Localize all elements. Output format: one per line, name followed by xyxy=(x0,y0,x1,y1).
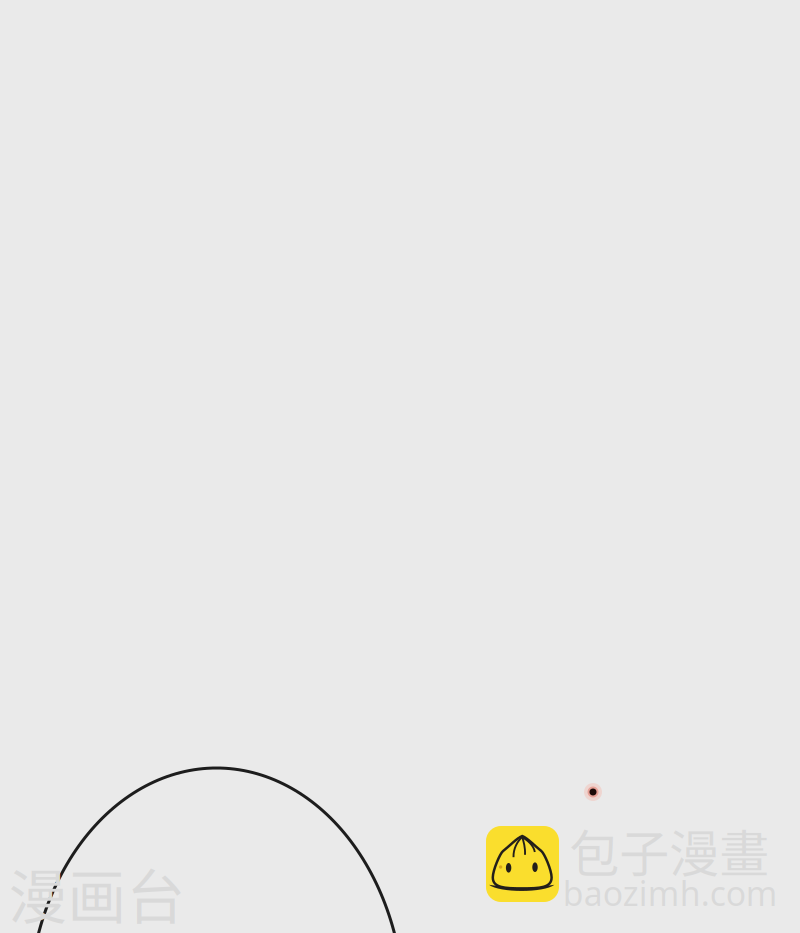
staticText: 包子漫畫 xyxy=(569,814,769,887)
staticText: baozimh.com xyxy=(563,870,778,916)
staticText: 漫画台 xyxy=(9,851,186,933)
